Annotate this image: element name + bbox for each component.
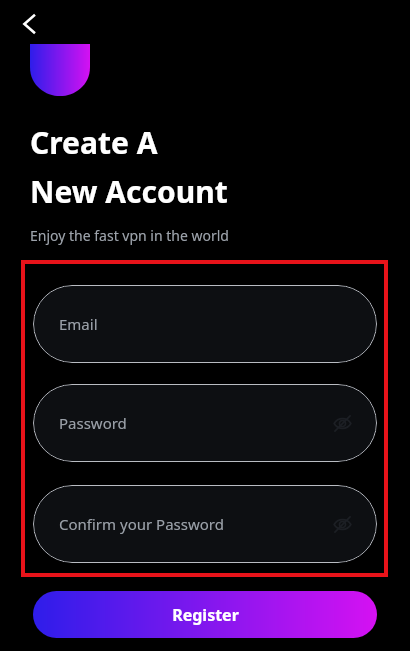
staticText: Create A — [30, 122, 158, 163]
staticText: Confirm your Password — [59, 514, 224, 534]
staticText: New Account — [30, 171, 228, 212]
staticText: Email — [59, 314, 98, 334]
button[interactable]: Toggle password visibility — [327, 509, 357, 539]
button[interactable]: Back — [8, 2, 52, 46]
staticText: Enjoy the fast vpn in the world — [30, 226, 229, 245]
staticText: Register — [172, 604, 239, 626]
button[interactable]: Register — [33, 591, 377, 638]
button[interactable]: Password — [33, 384, 377, 462]
button[interactable]: Email — [33, 285, 377, 363]
staticText: Password — [59, 413, 127, 433]
button[interactable]: Confirm your Password — [33, 485, 377, 563]
button[interactable]: Toggle password visibility — [327, 408, 357, 438]
